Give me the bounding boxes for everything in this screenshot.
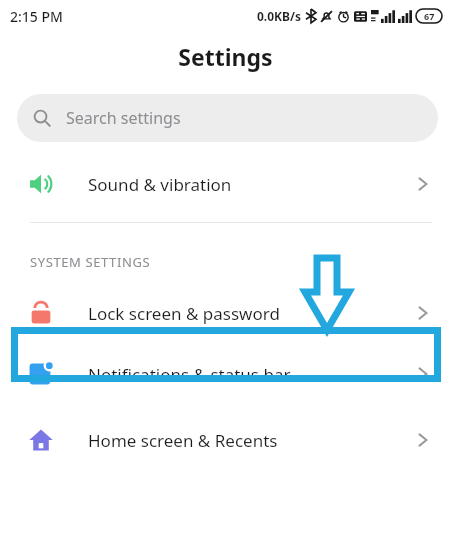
staticText: 0.0KB/s — [257, 8, 302, 24]
staticText: Sound & vibration — [88, 173, 232, 196]
staticText: Settings — [178, 41, 273, 72]
button[interactable]: Sound & vibration — [0, 156, 450, 212]
staticText: Lock screen & password — [88, 302, 280, 325]
staticText: Home screen & Recents — [88, 429, 278, 452]
staticText: Notifications & status bar — [88, 363, 291, 386]
button[interactable]: Search settings — [17, 94, 438, 142]
staticText: 2:15 PM — [10, 7, 63, 26]
button[interactable]: Home screen & Recents — [0, 407, 450, 473]
staticText: 67 — [424, 10, 435, 22]
button[interactable]: Lock screen & password — [0, 285, 450, 341]
button[interactable]: Notifications & status bar — [0, 341, 450, 407]
staticText: SYSTEM SETTINGS — [30, 253, 151, 271]
staticText: Search settings — [66, 107, 181, 129]
